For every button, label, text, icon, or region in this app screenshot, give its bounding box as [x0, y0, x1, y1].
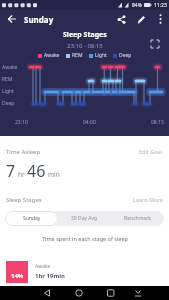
- staticText: Time Asleep: [6, 148, 41, 156]
- button[interactable]: Sleep Stages: [6, 196, 163, 204]
- button[interactable]: Sunday: [5, 211, 58, 226]
- button[interactable]: Time Asleep: [6, 148, 163, 156]
- button[interactable]: [131, 10, 151, 28]
- staticText: 46: [27, 160, 46, 182]
- button[interactable]: Benchmark: [111, 211, 164, 226]
- staticText: Light: [2, 88, 14, 95]
- button[interactable]: 30 Day Avg: [58, 211, 111, 226]
- staticText: 14%: [11, 272, 24, 280]
- staticText: 7: [6, 160, 16, 182]
- staticText: Sleep Stages: [63, 30, 107, 40]
- staticText: hr: [18, 170, 25, 179]
- staticText: Light: [95, 52, 107, 59]
- staticText: 84%: [132, 2, 142, 9]
- staticText: Time spent in each stage of sleep: [42, 235, 128, 242]
- button[interactable]: [0, 10, 24, 28]
- button[interactable]: [127, 286, 169, 300]
- staticText: 08:15: [151, 119, 164, 126]
- staticText: 23:10 - 08:15: [67, 42, 103, 50]
- button[interactable]: [111, 10, 131, 28]
- staticText: 1hr 19min: [35, 272, 65, 280]
- staticText: 04:00: [83, 119, 96, 126]
- staticText: Awake: [35, 263, 51, 270]
- staticText: Deep: [119, 52, 132, 59]
- staticText: Benchmark: [124, 215, 151, 222]
- staticText: Awake: [44, 52, 60, 59]
- staticText: Edit Goal: [139, 148, 163, 155]
- staticText: Sunday: [23, 215, 41, 222]
- staticText: 23:10: [15, 119, 28, 126]
- staticText: Learn More: [133, 196, 163, 203]
- staticText: Sleep Stages: [6, 196, 42, 204]
- staticText: 30 Day Avg: [71, 215, 98, 222]
- staticText: Sunday: [24, 14, 54, 25]
- staticText: REM: [72, 52, 83, 59]
- staticText: min: [48, 170, 60, 179]
- staticText: Awake: [2, 64, 18, 71]
- button[interactable]: [149, 38, 161, 50]
- button[interactable]: 14%: [6, 261, 169, 283]
- staticText: 11:23: [154, 2, 167, 9]
- staticText: REM: [2, 76, 13, 83]
- button[interactable]: [43, 286, 85, 300]
- button[interactable]: [85, 286, 127, 300]
- button[interactable]: [151, 10, 169, 28]
- staticText: Deep: [2, 100, 15, 107]
